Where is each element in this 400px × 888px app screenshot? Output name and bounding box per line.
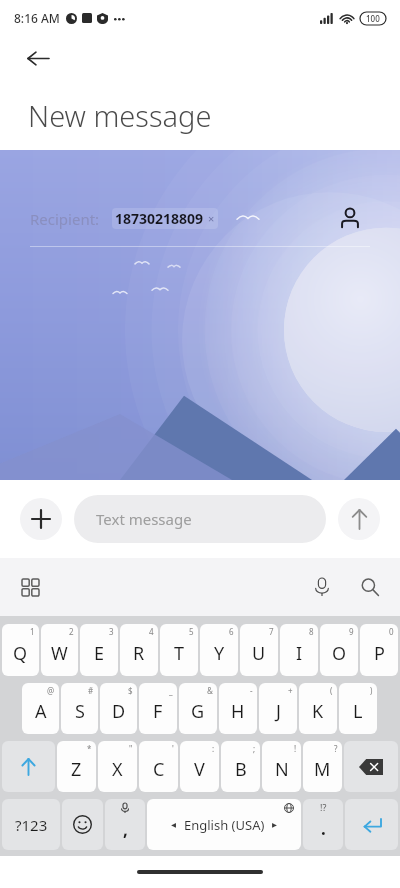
button[interactable]: G <box>179 683 217 734</box>
button[interactable]: O <box>320 624 358 676</box>
button[interactable]: F <box>139 683 177 734</box>
button[interactable]: Period <box>303 799 343 850</box>
button[interactable]: T <box>160 624 198 676</box>
staticText: P <box>374 641 385 666</box>
button[interactable]: U <box>240 624 278 676</box>
staticText: A <box>35 699 47 724</box>
staticText: E <box>94 641 105 666</box>
staticText: ?123 <box>15 815 48 835</box>
staticText: 100 <box>366 13 380 24</box>
staticText: O <box>332 641 347 666</box>
button[interactable]: K <box>299 683 337 734</box>
staticText: B <box>235 757 247 782</box>
button[interactable]: P <box>360 624 398 676</box>
staticText: L <box>353 699 363 724</box>
button[interactable]: Shift <box>2 741 55 792</box>
staticText: V <box>194 757 205 782</box>
button[interactable]: J <box>259 683 297 734</box>
button[interactable]: Add attachment <box>20 498 62 540</box>
button[interactable]: Text message <box>74 495 326 543</box>
staticText: . <box>321 817 326 840</box>
button[interactable]: W <box>41 624 78 676</box>
staticText: N <box>275 757 289 782</box>
staticText: H <box>231 699 245 724</box>
staticText: ? <box>334 743 338 754</box>
staticText: ; <box>253 743 256 754</box>
staticText: R <box>133 641 145 666</box>
button[interactable]: Voice input <box>302 567 342 607</box>
button[interactable]: B <box>221 741 260 792</box>
staticText: : <box>212 743 215 754</box>
staticText: 2 <box>69 626 74 637</box>
staticText: 4 <box>149 626 154 637</box>
button[interactable]: Search <box>350 567 390 607</box>
staticText: W <box>51 641 68 666</box>
staticText: " <box>129 743 133 754</box>
staticText: , <box>123 818 128 841</box>
staticText: T <box>174 641 185 666</box>
button[interactable]: Keyboard modes <box>10 567 50 607</box>
staticText: Recipient: <box>30 209 100 229</box>
button[interactable]: N <box>262 741 301 792</box>
staticText: # <box>88 685 94 696</box>
button[interactable]: M <box>303 741 342 792</box>
button[interactable]: Enter <box>345 799 398 850</box>
staticText: 18730218809 <box>115 209 204 228</box>
button[interactable]: Back <box>18 38 58 78</box>
staticText: 9 <box>349 626 354 637</box>
staticText: New message <box>28 96 212 135</box>
button[interactable]: Space, English (USA) <box>147 799 301 850</box>
button[interactable]: H <box>219 683 257 734</box>
button[interactable]: A <box>22 683 59 734</box>
staticText: ) <box>370 685 373 696</box>
button[interactable]: Symbols <box>2 799 60 850</box>
staticText: G <box>191 699 205 724</box>
button[interactable]: Backspace <box>344 741 398 792</box>
staticText: C <box>153 757 165 782</box>
staticText: J <box>276 699 281 724</box>
button[interactable]: Y <box>200 624 238 676</box>
staticText: & <box>207 685 213 696</box>
staticText: S <box>75 699 85 724</box>
staticText: * <box>87 743 92 754</box>
staticText: × <box>208 211 215 226</box>
staticText: English (USA) <box>184 816 265 834</box>
staticText: K <box>312 699 324 724</box>
staticText: - <box>250 685 253 696</box>
staticText: 8 <box>309 626 314 637</box>
staticText: 5 <box>189 626 194 637</box>
staticText: _ <box>169 685 173 696</box>
button[interactable]: D <box>100 683 137 734</box>
staticText: ◂ <box>171 819 177 831</box>
button[interactable]: Z <box>57 741 96 792</box>
staticText: 1 <box>30 626 35 637</box>
button[interactable]: C <box>139 741 178 792</box>
button[interactable]: Choose contact <box>330 198 370 238</box>
button[interactable]: Send <box>338 498 380 540</box>
staticText: 6 <box>229 626 234 637</box>
button[interactable]: V <box>180 741 219 792</box>
button[interactable]: Q <box>2 624 39 676</box>
staticText: @ <box>47 685 55 696</box>
staticText: $ <box>128 685 133 696</box>
button[interactable]: Comma <box>105 799 145 850</box>
staticText: 8:16 AM <box>14 10 60 26</box>
button[interactable]: L <box>339 683 377 734</box>
staticText: ' <box>172 743 174 754</box>
button[interactable]: I <box>280 624 318 676</box>
button[interactable]: Recipient: <box>30 208 330 229</box>
button[interactable]: X <box>98 741 137 792</box>
button[interactable]: Emoji <box>62 799 103 850</box>
staticText: D <box>112 699 126 724</box>
button[interactable]: R <box>120 624 158 676</box>
staticText: !? <box>320 801 327 813</box>
staticText: ! <box>294 743 297 754</box>
button[interactable]: E <box>80 624 118 676</box>
staticText: 7 <box>269 626 274 637</box>
button[interactable]: S <box>61 683 98 734</box>
staticText: Z <box>71 757 82 782</box>
staticText: X <box>112 757 123 782</box>
staticText: 3 <box>109 626 114 637</box>
staticText: Y <box>214 641 225 666</box>
staticText: ▸ <box>272 819 278 831</box>
